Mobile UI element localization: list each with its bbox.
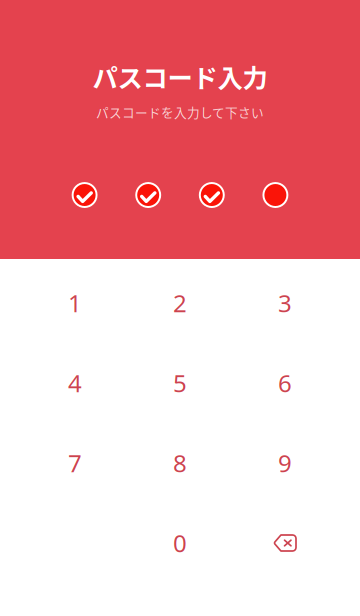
staticText: パスコードを入力して下さい	[96, 103, 264, 121]
button[interactable]: 9	[232, 423, 337, 503]
staticText: 5	[173, 367, 187, 399]
staticText: 0	[173, 527, 187, 559]
button[interactable]: 3	[232, 263, 337, 343]
staticText: 3	[278, 287, 292, 319]
staticText: 1	[68, 287, 82, 319]
button[interactable]: Delete	[232, 503, 337, 583]
staticText: 6	[278, 367, 292, 399]
button[interactable]: 7	[22, 423, 127, 503]
button[interactable]: 6	[232, 343, 337, 423]
button[interactable]: 8	[127, 423, 232, 503]
staticText: 4	[68, 367, 82, 399]
staticText: パスコード入力	[92, 58, 267, 95]
staticText: 7	[68, 447, 82, 479]
button[interactable]: 5	[127, 343, 232, 423]
button[interactable]: 4	[22, 343, 127, 423]
button[interactable]: 2	[127, 263, 232, 343]
staticText: 2	[173, 287, 187, 319]
button[interactable]: 1	[22, 263, 127, 343]
staticText: 8	[173, 447, 187, 479]
staticText: 9	[278, 447, 292, 479]
button[interactable]: 0	[127, 503, 232, 583]
